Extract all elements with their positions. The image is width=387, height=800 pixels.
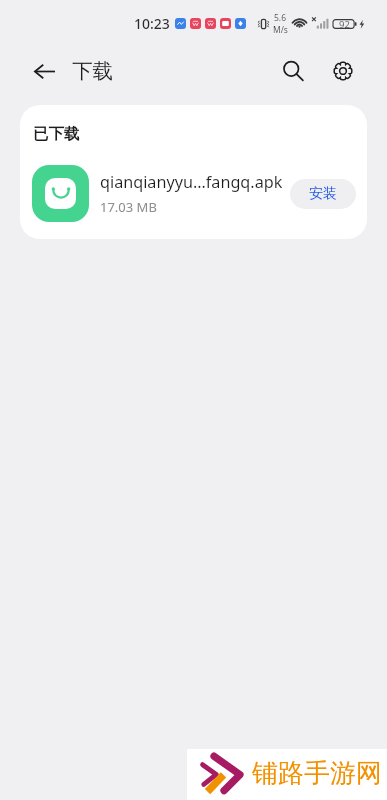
staticText: 17.03 MB [100,198,157,216]
staticText: qianqianyyu…fangq.apk [100,171,283,193]
button[interactable]: Back [30,57,58,85]
staticText: 10:23 [134,14,170,33]
staticText: 92 [339,18,350,31]
staticText: 已下载 [33,124,80,144]
staticText: 安装 [309,185,337,203]
staticText: M/s [273,24,288,36]
button[interactable]: Search [276,54,310,88]
button[interactable]: 安装 [290,179,356,209]
button[interactable]: Settings [326,54,360,88]
staticText: 下载 [72,58,113,84]
staticText: 5.6 [274,12,287,24]
staticText: 铺路手游网 [252,757,382,790]
button[interactable]: qianqianyyu…fangq.apk [20,144,367,239]
